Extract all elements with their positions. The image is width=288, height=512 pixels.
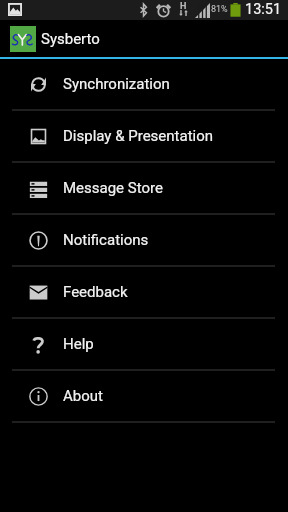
other: Sysberto app icon xyxy=(12,33,34,46)
button[interactable]: About xyxy=(0,371,288,421)
staticText: About xyxy=(63,387,103,405)
staticText: Feedback xyxy=(63,283,128,301)
button[interactable]: Message Store xyxy=(0,163,288,213)
button[interactable]: Feedback xyxy=(0,267,288,317)
staticText: Display & Presentation xyxy=(63,127,214,145)
button[interactable]: Synchronization xyxy=(0,59,288,109)
staticText: 81% xyxy=(211,4,228,15)
staticText: Sysberto xyxy=(41,30,100,48)
staticText: Notifications xyxy=(63,231,149,249)
button[interactable]: Display & Presentation xyxy=(0,111,288,161)
button[interactable]: Help xyxy=(0,319,288,369)
staticText: 13:51 xyxy=(245,1,282,18)
button[interactable]: Notifications xyxy=(0,215,288,265)
staticText: Message Store xyxy=(63,179,163,197)
staticText: Synchronization xyxy=(63,75,170,93)
staticText: Help xyxy=(63,335,94,353)
button[interactable]: Sysberto app icon xyxy=(0,20,288,57)
staticText: H xyxy=(180,1,187,12)
